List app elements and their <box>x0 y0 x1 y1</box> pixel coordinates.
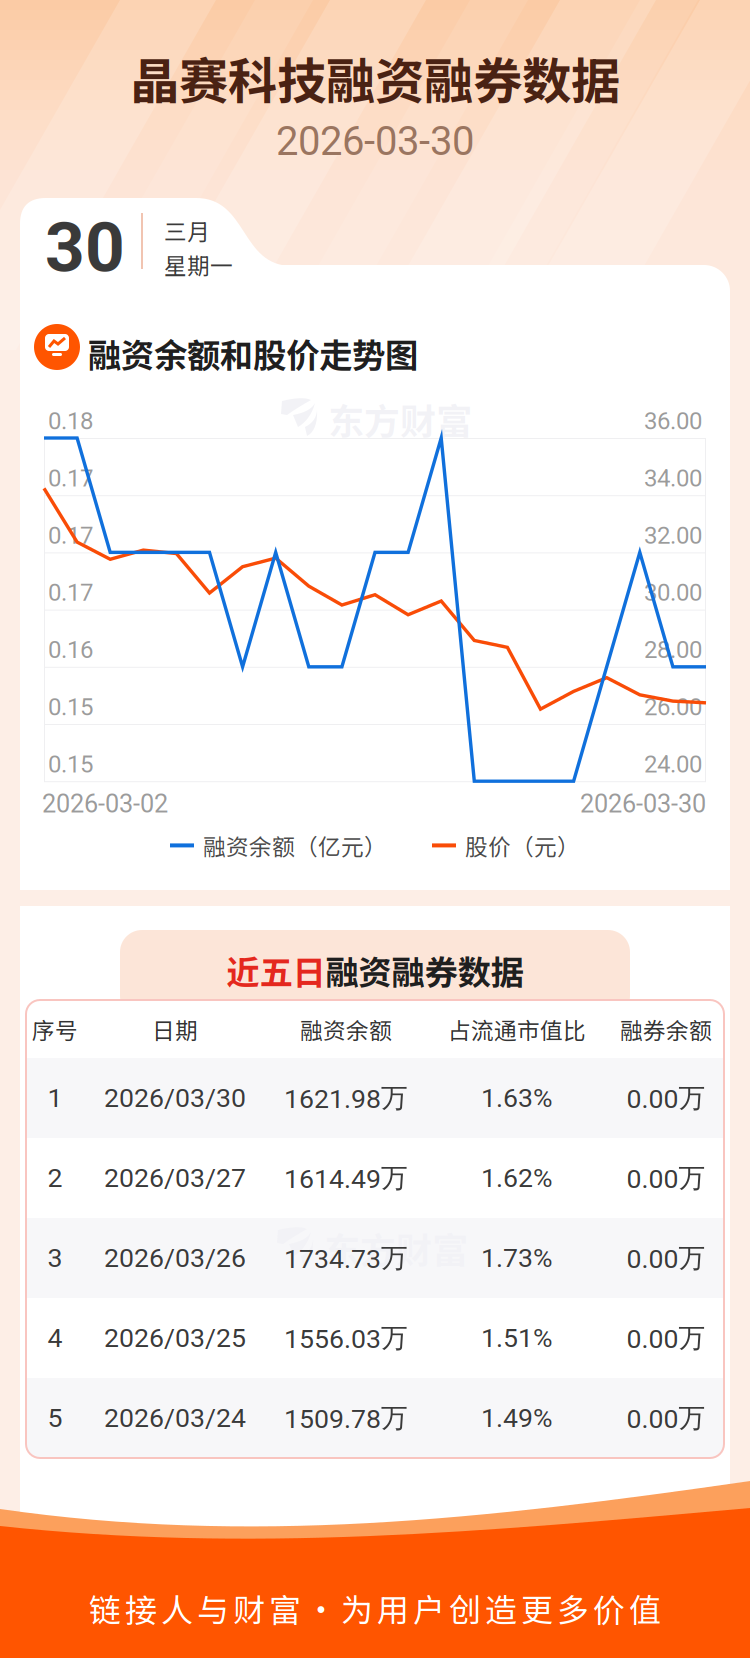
staticText: 0.16 <box>48 636 93 664</box>
staticText: 5 <box>47 1402 62 1434</box>
staticText: 1.73% <box>481 1242 553 1274</box>
staticText: 占流通市值比 <box>448 1013 586 1045</box>
staticText: 1614.49万 <box>284 1161 408 1195</box>
staticText: 融资融券数据 <box>325 946 523 994</box>
staticText: 0.00万 <box>626 1081 705 1115</box>
staticText: 1 <box>47 1082 62 1114</box>
staticText: 0.15 <box>48 750 93 778</box>
staticText: 26.00 <box>644 693 702 721</box>
staticText: 2026-03-30 <box>580 789 706 819</box>
staticText: 2026/03/30 <box>104 1082 246 1114</box>
staticText: 2026-03-02 <box>42 789 168 819</box>
staticText: 晶赛科技融资融券数据 <box>130 42 620 113</box>
staticText: 32.00 <box>644 521 702 549</box>
staticText: 30.00 <box>644 579 702 607</box>
staticText: 4 <box>47 1322 62 1354</box>
staticText: 2 <box>47 1162 62 1194</box>
staticText: 36.00 <box>644 407 702 435</box>
staticText: 34.00 <box>644 464 702 492</box>
staticText: 近五日 <box>226 946 325 994</box>
staticText: 三月 <box>164 214 210 247</box>
staticText: 0.00万 <box>626 1241 705 1275</box>
staticText: 0.00万 <box>626 1401 705 1435</box>
staticText: 0.00万 <box>626 1161 705 1195</box>
staticText: 30 <box>45 207 125 288</box>
staticText: 融券余额 <box>620 1013 712 1045</box>
staticText: 融资余额 <box>300 1013 392 1045</box>
staticText: 融资余额和股价走势图 <box>88 329 418 377</box>
staticText: 序号 <box>32 1013 78 1045</box>
staticText: 0.00万 <box>626 1321 705 1355</box>
staticText: 3 <box>47 1242 62 1274</box>
staticText: 融资余额（亿元） <box>203 829 387 862</box>
staticText: 0.17 <box>48 521 93 549</box>
staticText: 1.63% <box>481 1082 553 1114</box>
staticText: 1734.73万 <box>284 1241 408 1275</box>
staticText: 东方财富 <box>328 393 472 445</box>
staticText: 1.51% <box>481 1322 553 1354</box>
staticText: 2026-03-30 <box>276 118 474 165</box>
staticText: 24.00 <box>644 750 702 778</box>
staticText: 日期 <box>152 1013 198 1045</box>
staticText: 东方财富 <box>324 1222 468 1274</box>
staticText: 2026/03/25 <box>104 1322 246 1354</box>
staticText: 0.15 <box>48 693 93 721</box>
staticText: 0.18 <box>48 407 93 435</box>
staticText: 0.17 <box>48 464 93 492</box>
staticText: 1556.03万 <box>284 1321 408 1355</box>
staticText: 0.17 <box>48 579 93 607</box>
staticText: 1509.78万 <box>284 1401 408 1435</box>
staticText: 2026/03/24 <box>104 1402 246 1434</box>
staticText: 2026/03/26 <box>104 1242 246 1274</box>
staticText: 1.62% <box>481 1162 553 1194</box>
staticText: 1.49% <box>481 1402 553 1434</box>
staticText: 链接人与财富·为用户创造更多价值 <box>89 1585 661 1631</box>
staticText: 2026/03/27 <box>104 1162 246 1194</box>
staticText: 28.00 <box>644 636 702 664</box>
staticText: 星期一 <box>164 248 233 281</box>
staticText: 1621.98万 <box>284 1081 408 1115</box>
staticText: 股价（元） <box>465 829 580 862</box>
